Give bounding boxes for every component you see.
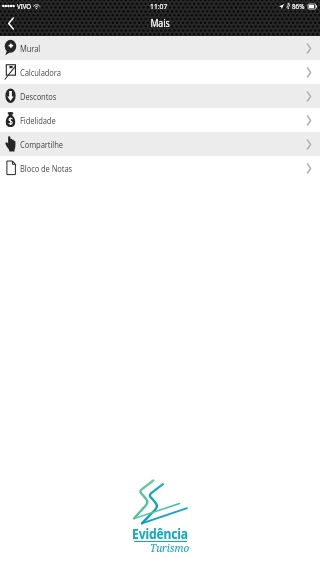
staticText: VIVO bbox=[17, 2, 32, 11]
staticText: Turismo bbox=[150, 541, 190, 555]
staticText: Mural bbox=[20, 42, 40, 55]
staticText: Bloco de Notas bbox=[20, 162, 72, 175]
button[interactable]: Calculadora bbox=[0, 60, 320, 84]
button[interactable]: Bloco de Notas bbox=[0, 156, 320, 180]
button[interactable]: Descontos bbox=[0, 84, 320, 108]
button[interactable]: Fidelidade bbox=[0, 108, 320, 132]
button[interactable]: Mural bbox=[0, 36, 320, 60]
button[interactable]: Back bbox=[0, 12, 22, 34]
staticText: Descontos bbox=[20, 90, 57, 103]
staticText: Fidelidade bbox=[20, 114, 56, 127]
staticText: Evidência bbox=[132, 525, 188, 543]
staticText: Mais bbox=[150, 16, 171, 30]
staticText: 86% bbox=[292, 2, 305, 11]
staticText: 11:07 bbox=[150, 2, 168, 11]
staticText: Calculadora bbox=[20, 66, 61, 79]
staticText: Compartilhe bbox=[20, 138, 63, 151]
button[interactable]: Compartilhe bbox=[0, 132, 320, 156]
